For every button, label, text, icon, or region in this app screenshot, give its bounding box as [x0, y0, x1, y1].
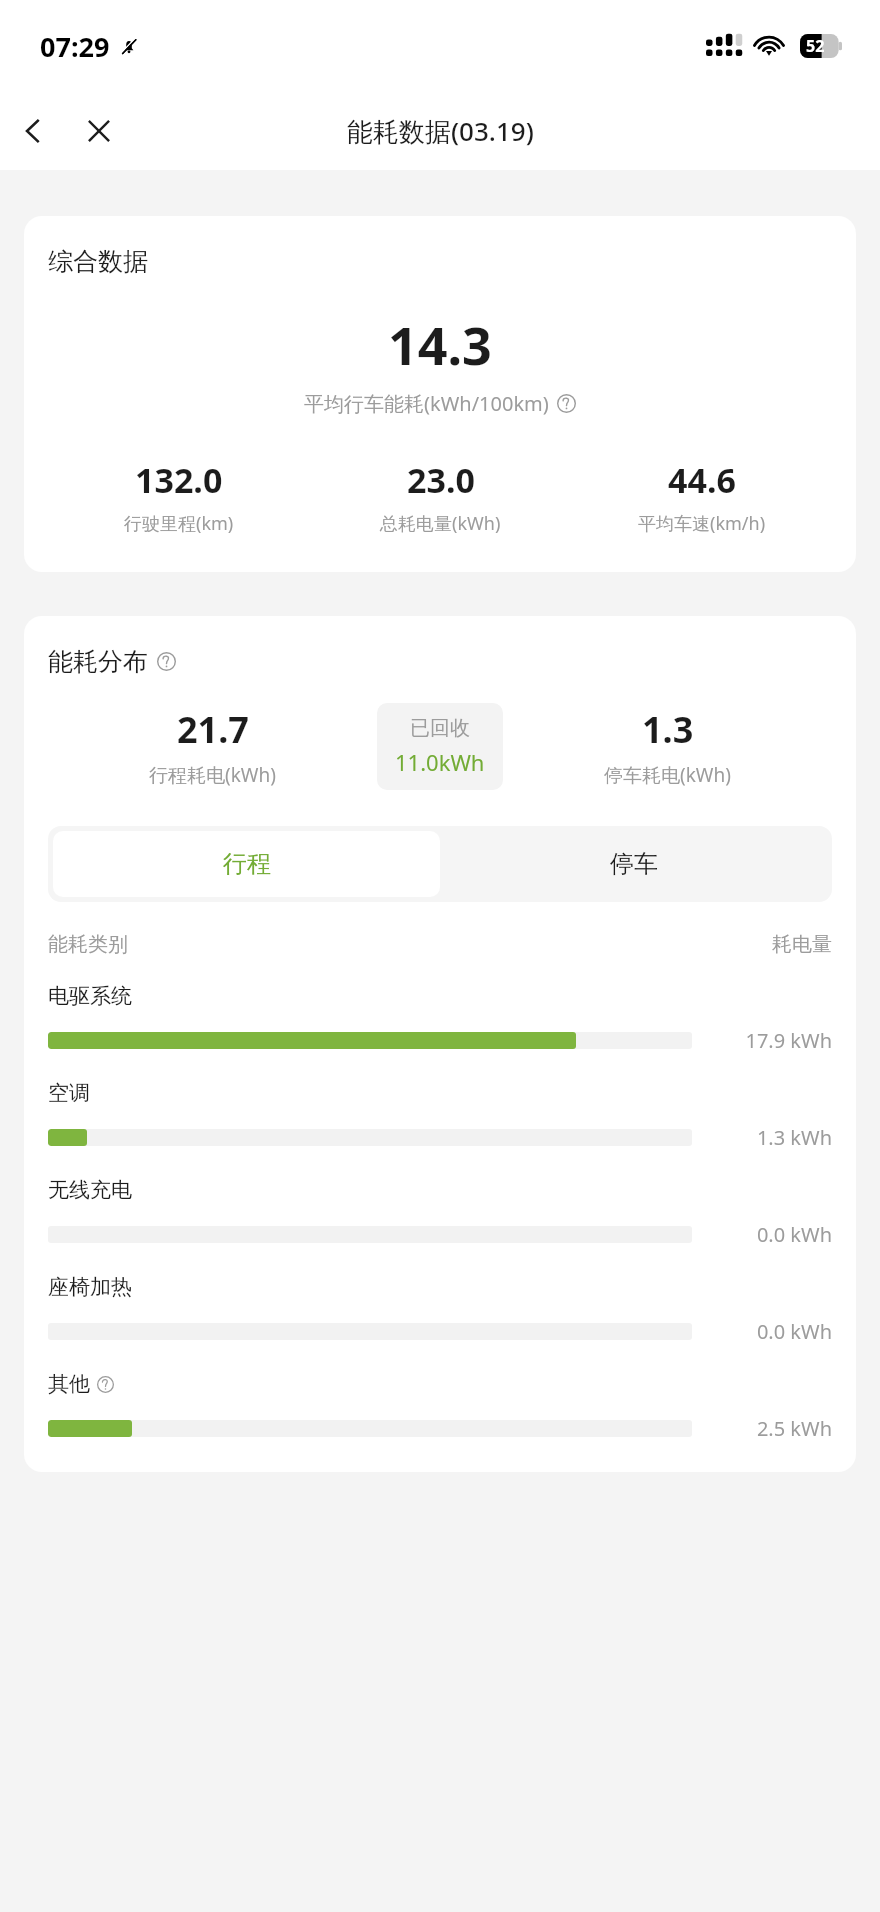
staticText: 1.3 kWh: [692, 1124, 832, 1151]
staticText: 总耗电量(kWh): [380, 511, 501, 536]
staticText: 无线充电: [48, 1177, 132, 1203]
staticText: 21.7: [177, 705, 249, 754]
staticText: 能耗类别: [48, 932, 128, 957]
staticText: 已回收: [410, 716, 470, 741]
staticText: 2.5 kWh: [692, 1415, 832, 1442]
staticText: 行驶里程(km): [124, 511, 234, 536]
button[interactable]: Back: [0, 98, 66, 164]
staticText: 07:29: [40, 28, 110, 65]
staticText: 综合数据: [48, 246, 148, 277]
staticText: 停车耗电(kWh): [604, 762, 731, 788]
staticText: 14.3: [388, 309, 492, 380]
staticText: 132.0: [135, 457, 223, 503]
staticText: 电驱系统: [48, 983, 132, 1009]
staticText: 17.9 kWh: [692, 1027, 832, 1054]
staticText: 平均行车能耗(kWh/100km): [304, 390, 549, 417]
button[interactable]: 停车: [440, 831, 827, 897]
staticText: 能耗数据(03.19): [347, 113, 534, 149]
staticText: 0.0 kWh: [692, 1221, 832, 1248]
staticText: 1.3: [642, 705, 694, 754]
staticText: 座椅加热: [48, 1274, 132, 1300]
staticText: 44.6: [668, 457, 736, 503]
staticText: 空调: [48, 1080, 90, 1106]
staticText: 52: [806, 35, 825, 57]
staticText: 23.0: [407, 457, 475, 503]
button[interactable]: 行程: [53, 831, 440, 897]
staticText: 行程耗电(kWh): [149, 762, 276, 788]
staticText: 0.0 kWh: [692, 1318, 832, 1345]
staticText: 11.0kWh: [395, 747, 485, 777]
staticText: 平均车速(km/h): [638, 511, 766, 536]
staticText: 耗电量: [772, 932, 832, 957]
staticText: 停车: [610, 849, 658, 879]
staticText: 行程: [223, 849, 271, 879]
button[interactable]: Close: [66, 98, 132, 164]
staticText: 其他: [48, 1371, 90, 1397]
staticText: 能耗分布: [48, 646, 148, 677]
